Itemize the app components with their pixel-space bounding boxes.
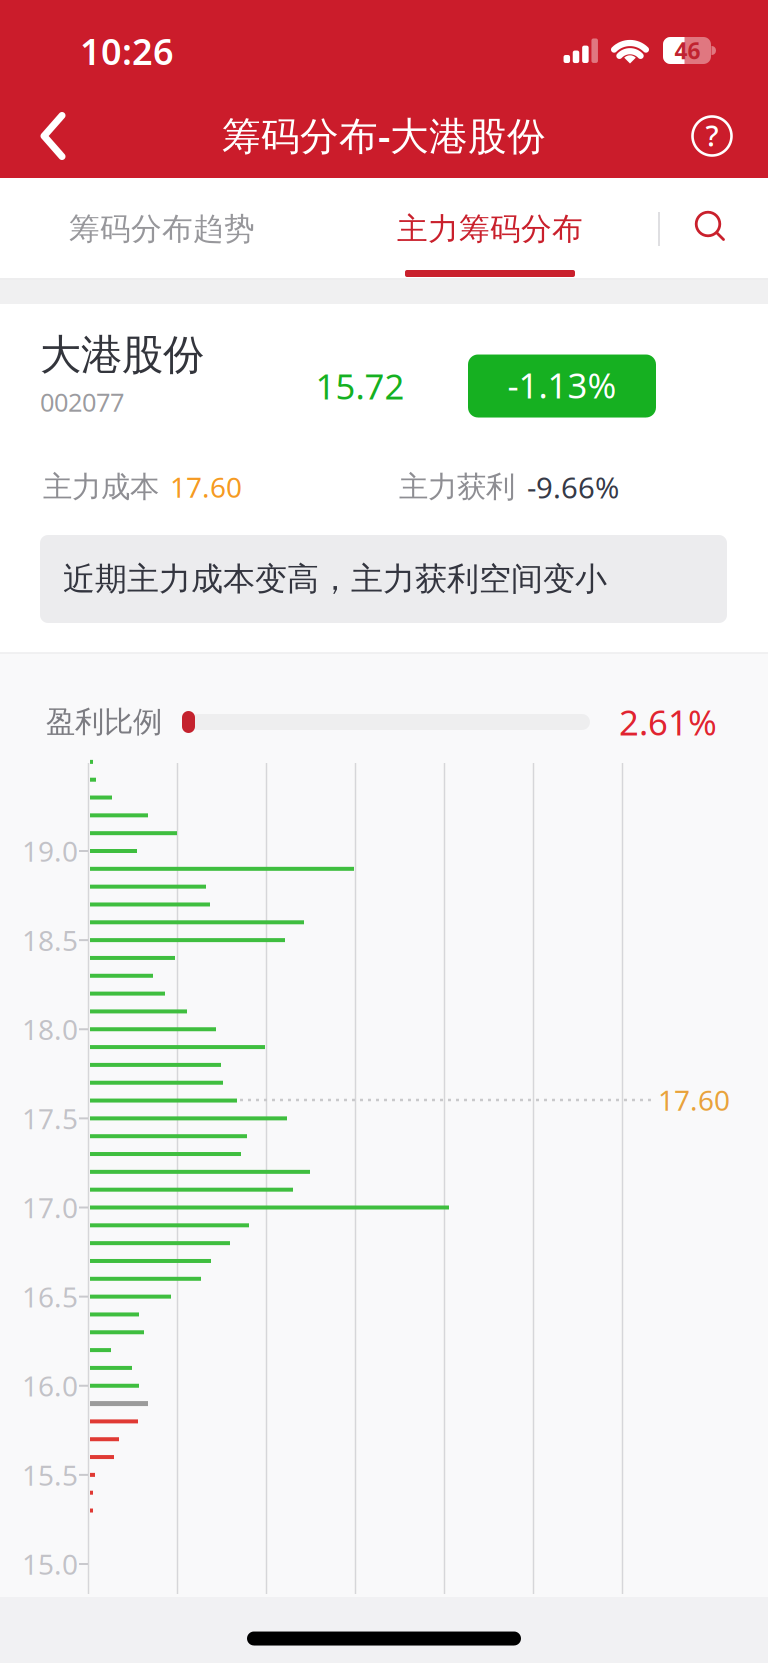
button[interactable]: 筹码分布趋势 <box>22 194 302 264</box>
staticText: 17.60 <box>170 468 242 506</box>
staticText: 16.0 <box>22 1367 78 1404</box>
staticText: ? <box>705 115 718 154</box>
staticText: 主力筹码分布 <box>397 210 583 248</box>
staticText: 46 <box>674 35 700 65</box>
staticText: 19.0 <box>22 832 78 870</box>
staticText: 17.0 <box>22 1189 78 1226</box>
staticText: 18.5 <box>22 921 78 959</box>
staticText: -1.13% <box>507 362 616 408</box>
staticText: 筹码分布-大港股份 <box>222 109 546 161</box>
staticText: 17.5 <box>22 1100 78 1137</box>
staticText: 近期主力成本变高，主力获利空间变小 <box>63 559 607 599</box>
staticText: 002077 <box>40 385 124 419</box>
staticText: 15.72 <box>315 363 404 409</box>
staticText: 主力获利 <box>399 469 515 505</box>
staticText: 17.60 <box>658 1081 730 1119</box>
button[interactable]: Search <box>685 201 737 253</box>
staticText: 18.0 <box>22 1011 78 1048</box>
staticText: 10:26 <box>80 27 174 75</box>
staticText: 15.5 <box>22 1456 78 1493</box>
staticText: 2.61% <box>619 699 717 745</box>
staticText: 盈利比例 <box>46 704 162 740</box>
button[interactable]: Back <box>21 96 85 176</box>
button[interactable]: Help <box>682 106 742 166</box>
staticText: 大港股份 <box>40 330 204 380</box>
staticText: 筹码分布趋势 <box>69 210 255 248</box>
staticText: 15.0 <box>22 1545 78 1583</box>
staticText: 主力成本 <box>43 469 159 505</box>
staticText: -9.66% <box>527 467 619 506</box>
staticText: 16.5 <box>22 1278 78 1315</box>
button[interactable]: 主力筹码分布 <box>350 194 630 264</box>
